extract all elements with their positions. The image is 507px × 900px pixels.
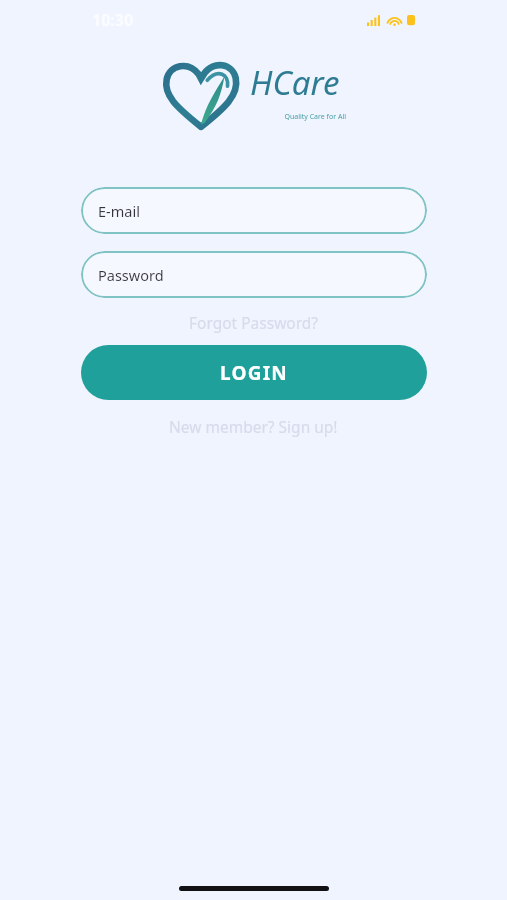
staticText: New member? Sign up! <box>169 416 338 437</box>
staticText: E-mail <box>98 201 140 221</box>
staticText: HCare <box>250 60 340 105</box>
staticText: 10:30 <box>92 9 134 31</box>
button[interactable]: New member? Sign up! <box>159 413 348 440</box>
staticText: LOGIN <box>220 360 288 386</box>
button[interactable]: E-mail <box>81 187 427 234</box>
staticText: Forgot Password? <box>189 312 319 333</box>
staticText: Password <box>98 265 164 285</box>
staticText: Quality Care for All <box>284 112 346 122</box>
button[interactable]: Password <box>81 251 427 298</box>
button[interactable]: Forgot Password? <box>179 309 329 336</box>
button[interactable]: LOGIN <box>81 345 427 400</box>
